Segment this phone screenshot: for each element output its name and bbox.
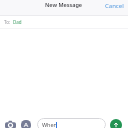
button[interactable]: Apps — [19, 118, 33, 128]
button[interactable]: To: — [0, 16, 128, 28]
button[interactable]: Send — [110, 119, 122, 128]
staticText: To: — [4, 19, 11, 25]
staticText: Dad — [13, 19, 22, 25]
button[interactable]: When — [37, 118, 106, 128]
button[interactable]: Cancel — [99, 0, 128, 14]
staticText: Cancel — [105, 2, 124, 10]
staticText: New Message — [45, 1, 83, 8]
staticText: When — [42, 121, 58, 128]
button[interactable]: Take photo — [3, 117, 17, 128]
